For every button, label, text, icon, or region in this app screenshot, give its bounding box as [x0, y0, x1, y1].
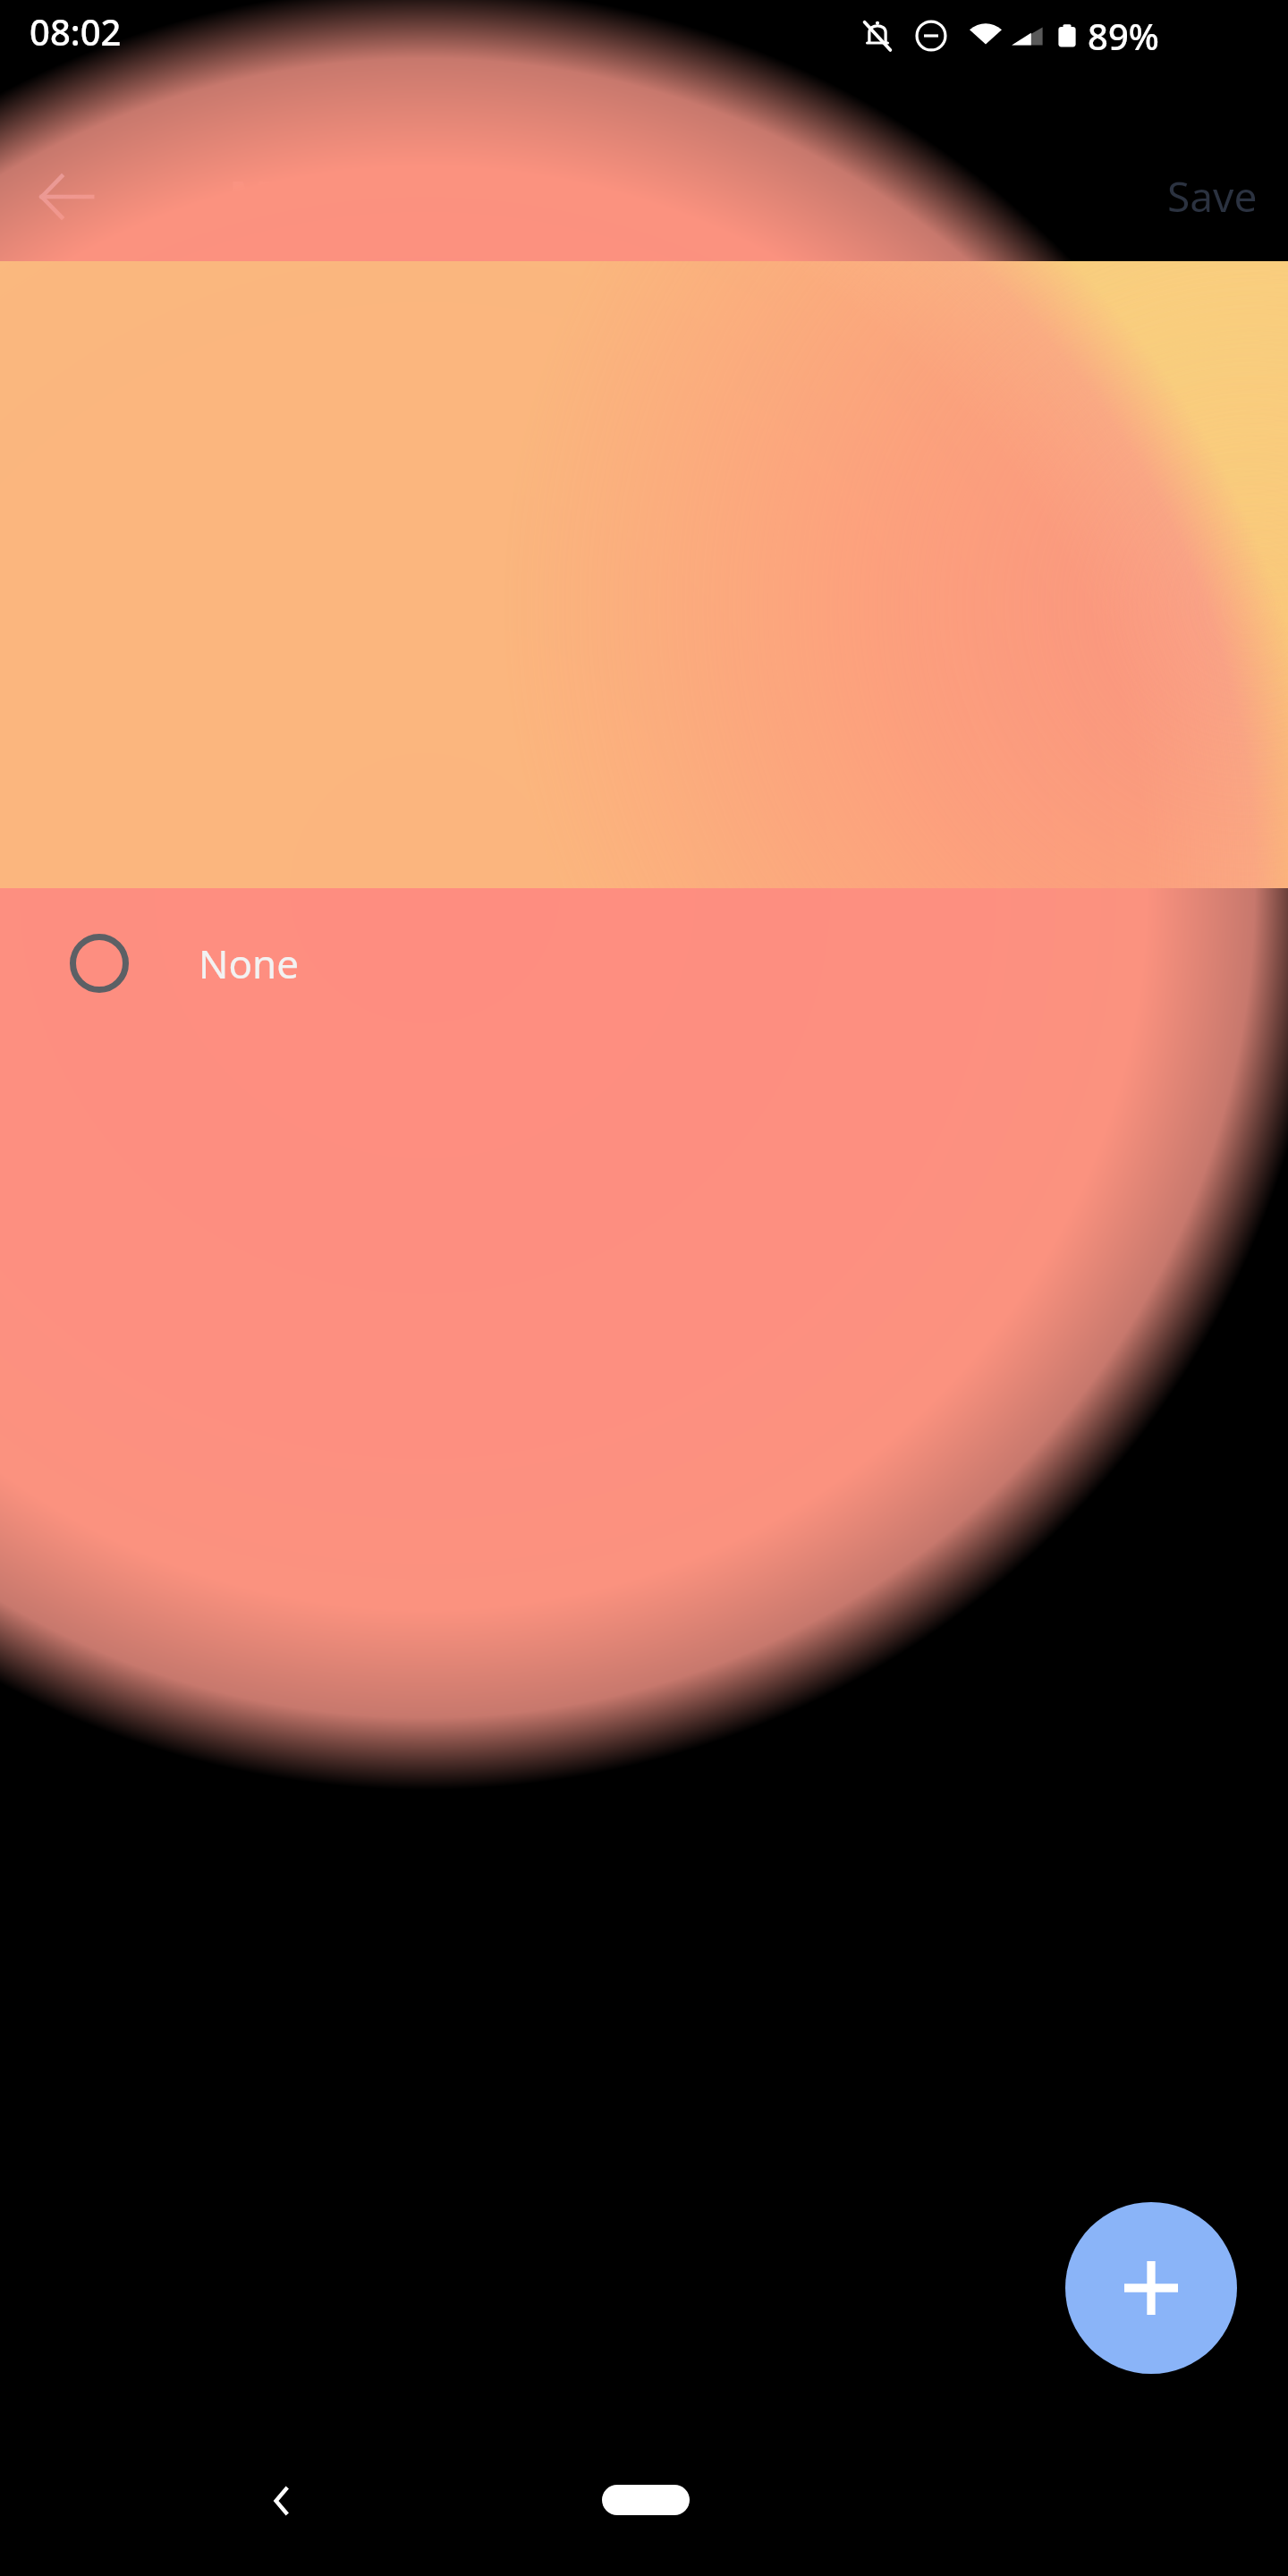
staticText: 08:02: [30, 7, 122, 55]
button[interactable]: Back: [25, 156, 107, 238]
button[interactable]: Home: [602, 2485, 690, 2515]
staticText: None: [199, 936, 300, 990]
button[interactable]: None: [0, 888, 1288, 1038]
button[interactable]: Add sound: [1065, 2202, 1237, 2374]
button[interactable]: Back: [240, 2458, 326, 2544]
button[interactable]: Save: [1153, 156, 1272, 237]
staticText: 89%: [1088, 12, 1159, 60]
staticText: Save: [1167, 168, 1258, 225]
